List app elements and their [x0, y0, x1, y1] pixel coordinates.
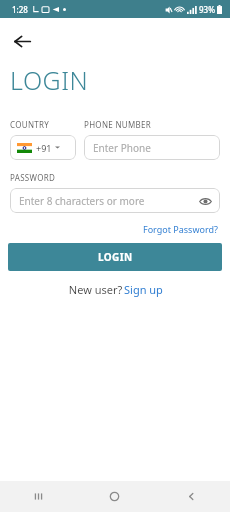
button[interactable]: Sign up: [124, 282, 163, 297]
button[interactable]: Home: [76, 481, 153, 512]
staticText: Enter Phone: [93, 141, 151, 155]
staticText: LOGIN: [98, 250, 133, 264]
button[interactable]: +91: [10, 135, 76, 160]
button[interactable]: Back: [153, 481, 230, 512]
staticText: Enter 8 characters or more: [19, 194, 145, 208]
button[interactable]: Show password: [196, 192, 214, 210]
staticText: PASSWORD: [10, 172, 56, 183]
staticText: 93%: [199, 4, 215, 15]
button[interactable]: Forgot Password?: [141, 221, 220, 237]
button[interactable]: LOGIN: [8, 243, 222, 271]
button[interactable]: Back: [4, 23, 40, 59]
staticText: PHONE NUMBER: [84, 119, 152, 130]
staticText: New user?: [67, 282, 124, 297]
button[interactable]: Enter Phone: [84, 135, 220, 160]
staticText: COUNTRY: [10, 119, 76, 130]
button[interactable]: Enter 8 characters or more: [10, 188, 220, 213]
button[interactable]: Recent apps: [0, 481, 76, 512]
staticText: 1:28: [12, 4, 28, 15]
staticText: +91: [36, 142, 52, 154]
staticText: LOGIN: [10, 63, 89, 97]
